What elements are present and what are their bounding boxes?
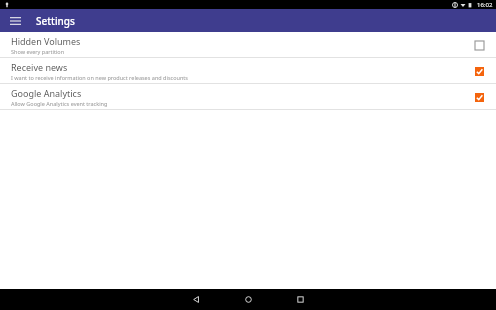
button[interactable]: Checked: [471, 63, 487, 79]
button[interactable]: Home: [222, 289, 274, 310]
button[interactable]: Recent apps: [274, 289, 326, 310]
staticText: Show every partition: [11, 48, 65, 55]
staticText: Settings: [36, 14, 75, 28]
button[interactable]: Unchecked: [471, 37, 487, 53]
staticText: Hidden Volumes: [11, 35, 81, 47]
button[interactable]: Checked: [471, 89, 487, 105]
staticText: 16:02: [477, 1, 493, 9]
staticText: I want to receive information on new pro…: [11, 74, 188, 81]
button[interactable]: Open navigation drawer: [6, 12, 24, 30]
button[interactable]: Hidden Volumes: [0, 32, 496, 57]
staticText: Receive news: [11, 61, 68, 73]
button[interactable]: Google Analytics: [0, 84, 496, 109]
staticText: Allow Google Analytics event tracking: [11, 100, 108, 107]
button[interactable]: Back: [170, 289, 222, 310]
staticText: Google Analytics: [11, 87, 82, 99]
button[interactable]: Receive news: [0, 58, 496, 83]
